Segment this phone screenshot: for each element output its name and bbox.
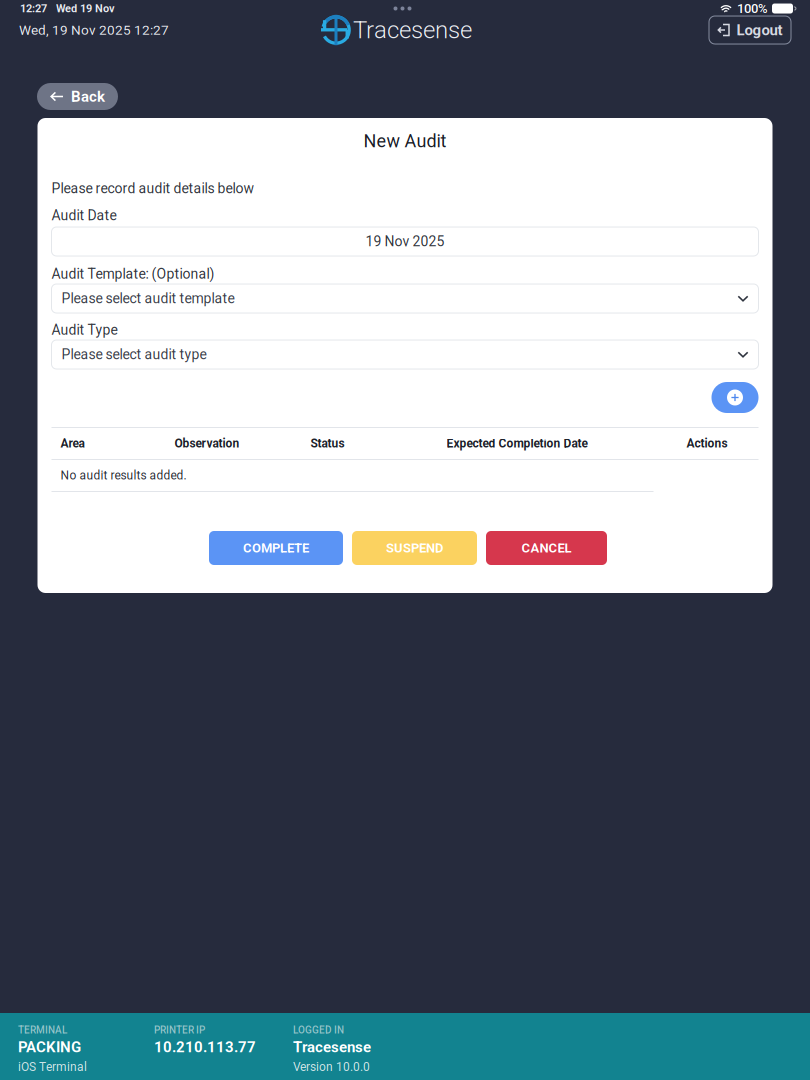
staticText: 19 Nov 2025 bbox=[365, 233, 444, 250]
staticText: PACKING bbox=[18, 1038, 81, 1056]
button[interactable]: Back bbox=[37, 83, 118, 110]
staticText: Wed, 19 Nov 2025 12:27 bbox=[19, 22, 169, 38]
staticText: Audit Date bbox=[51, 207, 116, 224]
staticText: No audit results added. bbox=[60, 468, 186, 483]
staticText: LOGGED IN bbox=[293, 1024, 344, 1036]
button[interactable]: Please select audit template bbox=[51, 284, 758, 313]
button[interactable]: CANCEL bbox=[486, 531, 607, 565]
staticText: Expected Completion Date bbox=[446, 436, 587, 451]
staticText: Area bbox=[60, 436, 84, 451]
staticText: 100% bbox=[737, 1, 768, 16]
staticText: Audit Type bbox=[51, 322, 117, 338]
staticText: iOS Terminal bbox=[18, 1060, 87, 1074]
staticText: New Audit bbox=[363, 130, 446, 152]
staticText: CANCEL bbox=[521, 540, 571, 556]
button[interactable]: Please select audit type bbox=[51, 340, 758, 369]
staticText: Please select audit template bbox=[61, 290, 234, 307]
button[interactable]: Add audit result bbox=[711, 382, 758, 413]
staticText: 12:27 bbox=[20, 2, 47, 15]
button[interactable]: Logout bbox=[709, 16, 791, 44]
staticText: Logout bbox=[736, 21, 782, 39]
staticText: Wed 19 Nov bbox=[56, 2, 115, 15]
button[interactable]: SUSPEND bbox=[352, 531, 477, 565]
staticText: Status bbox=[310, 436, 344, 451]
staticText: Back bbox=[71, 88, 105, 105]
staticText: Tracesense bbox=[353, 16, 472, 44]
staticText: Version 10.0.0 bbox=[293, 1060, 370, 1074]
staticText: 10.210.113.77 bbox=[154, 1038, 256, 1056]
staticText: Observation bbox=[174, 436, 239, 451]
staticText: COMPLETE bbox=[243, 540, 309, 556]
staticText: Please record audit details below bbox=[51, 180, 254, 197]
staticText: Audit Template: (Optional) bbox=[51, 266, 214, 282]
staticText: Actions bbox=[686, 436, 727, 451]
staticText: Please select audit type bbox=[61, 346, 206, 363]
staticText: PRINTER IP bbox=[154, 1024, 205, 1036]
staticText: SUSPEND bbox=[386, 540, 443, 556]
staticText: Tracesense bbox=[293, 1038, 371, 1056]
button[interactable]: COMPLETE bbox=[209, 531, 343, 565]
staticText: TERMINAL bbox=[18, 1024, 67, 1036]
